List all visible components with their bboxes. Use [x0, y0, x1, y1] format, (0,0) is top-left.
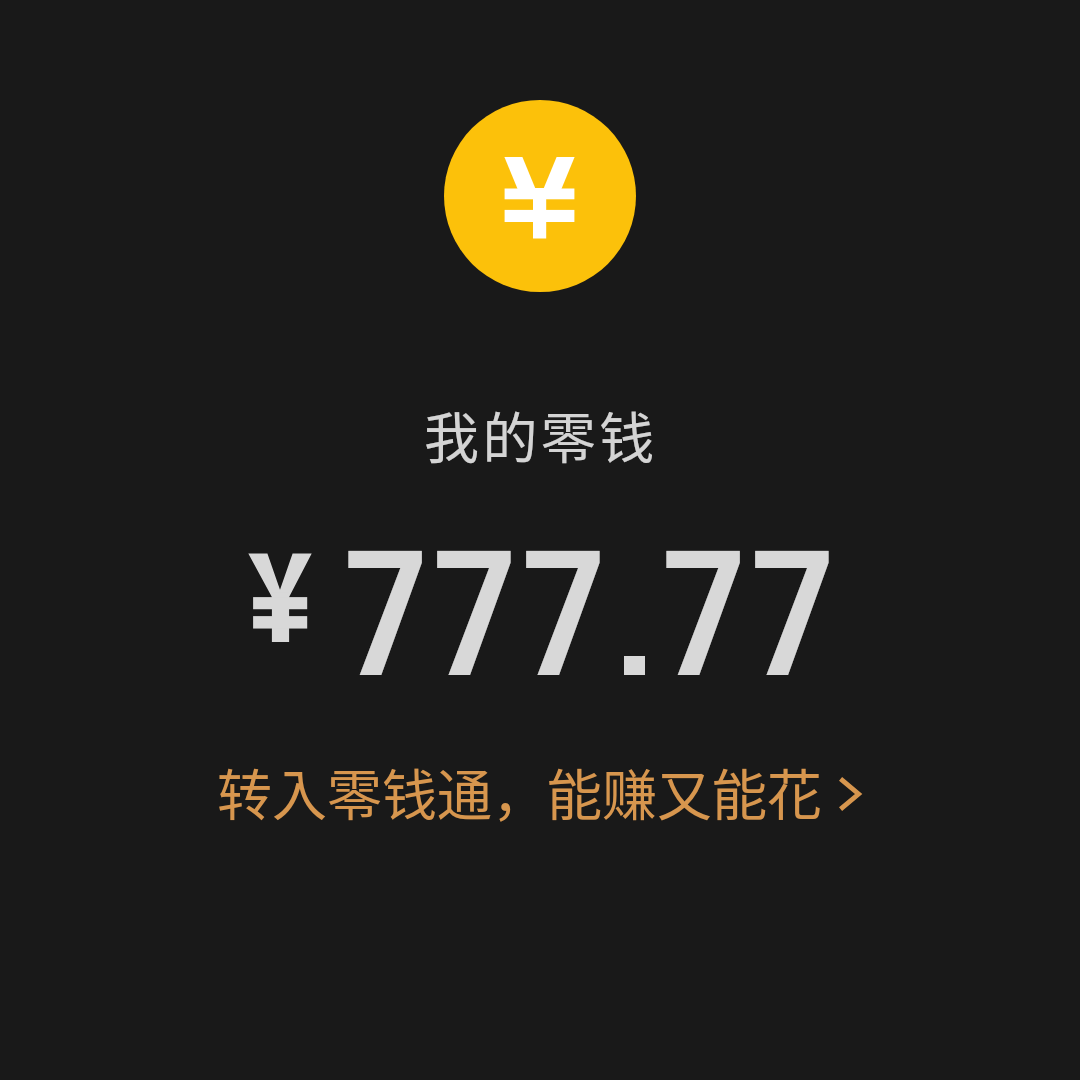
staticText: 77	[660, 514, 838, 718]
staticText: 777	[342, 514, 609, 718]
button[interactable]: My change balance	[444, 100, 636, 292]
button[interactable]: 转入零钱通，能赚又能花	[203, 745, 873, 840]
staticText: 我的零钱	[424, 394, 658, 474]
staticText: 转入零钱通，能赚又能花	[217, 751, 823, 831]
